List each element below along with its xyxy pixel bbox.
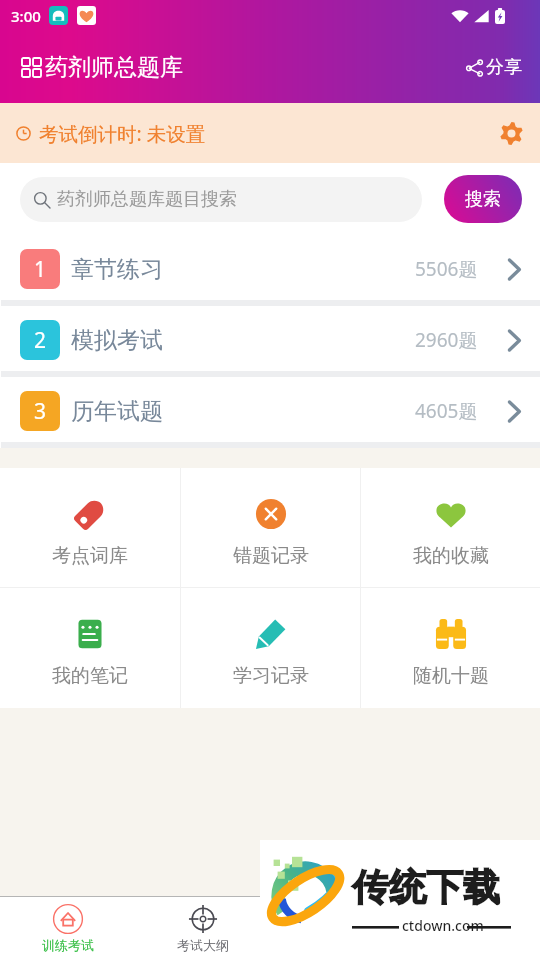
staticText: 3	[34, 397, 47, 426]
staticText: 模拟考试	[71, 326, 163, 355]
staticText: 历年试题	[71, 397, 163, 426]
staticText: 学习记录	[233, 664, 309, 688]
staticText: 考试大纲	[177, 937, 229, 953]
staticText: 考试倒计时: 未设置	[39, 120, 206, 147]
button[interactable]: 错题记录	[181, 468, 360, 587]
staticText: 传统下载	[352, 864, 500, 911]
staticText: 训练考试	[42, 937, 94, 953]
button[interactable]: 题库下载	[270, 897, 405, 960]
staticText: 搜索	[465, 188, 501, 211]
button[interactable]: 分享	[462, 50, 526, 85]
button[interactable]: 搜索	[444, 175, 522, 223]
staticText: 分享	[486, 56, 522, 79]
staticText: 错题记录	[233, 544, 309, 568]
staticText: ctdown.com	[402, 916, 484, 935]
staticText: 3:00	[11, 6, 41, 26]
button[interactable]: 2	[0, 306, 540, 371]
staticText: 考点词库	[52, 544, 128, 568]
staticText: 2	[34, 326, 47, 355]
button[interactable]: 我的收藏	[361, 468, 540, 587]
button[interactable]: 3	[0, 377, 540, 442]
staticText: 药剂师总题库	[45, 53, 183, 82]
staticText: 药剂师总题库题目搜索	[57, 188, 237, 211]
staticText: 4605题	[415, 398, 478, 424]
button[interactable]: 随机十题	[361, 588, 540, 708]
button[interactable]: 我的笔记	[0, 588, 180, 708]
staticText: 随机十题	[413, 664, 489, 688]
staticText: 5506题	[415, 256, 478, 282]
button[interactable]: 考点词库	[0, 468, 180, 587]
staticText: 我的收藏	[413, 544, 489, 568]
staticText: 章节练习	[71, 255, 163, 284]
button[interactable]: Settings	[493, 115, 529, 151]
button[interactable]: 药剂师总题库题目搜索	[20, 177, 422, 222]
button[interactable]: 学习记录	[181, 588, 360, 708]
button[interactable]: 1	[0, 235, 540, 300]
button[interactable]: 个人中心	[405, 897, 540, 960]
staticText: 我的笔记	[52, 664, 128, 688]
staticText: 2960题	[415, 327, 478, 353]
staticText: 1	[34, 255, 47, 284]
button[interactable]: 训练考试	[0, 897, 135, 960]
button[interactable]: 考试大纲	[135, 897, 270, 960]
